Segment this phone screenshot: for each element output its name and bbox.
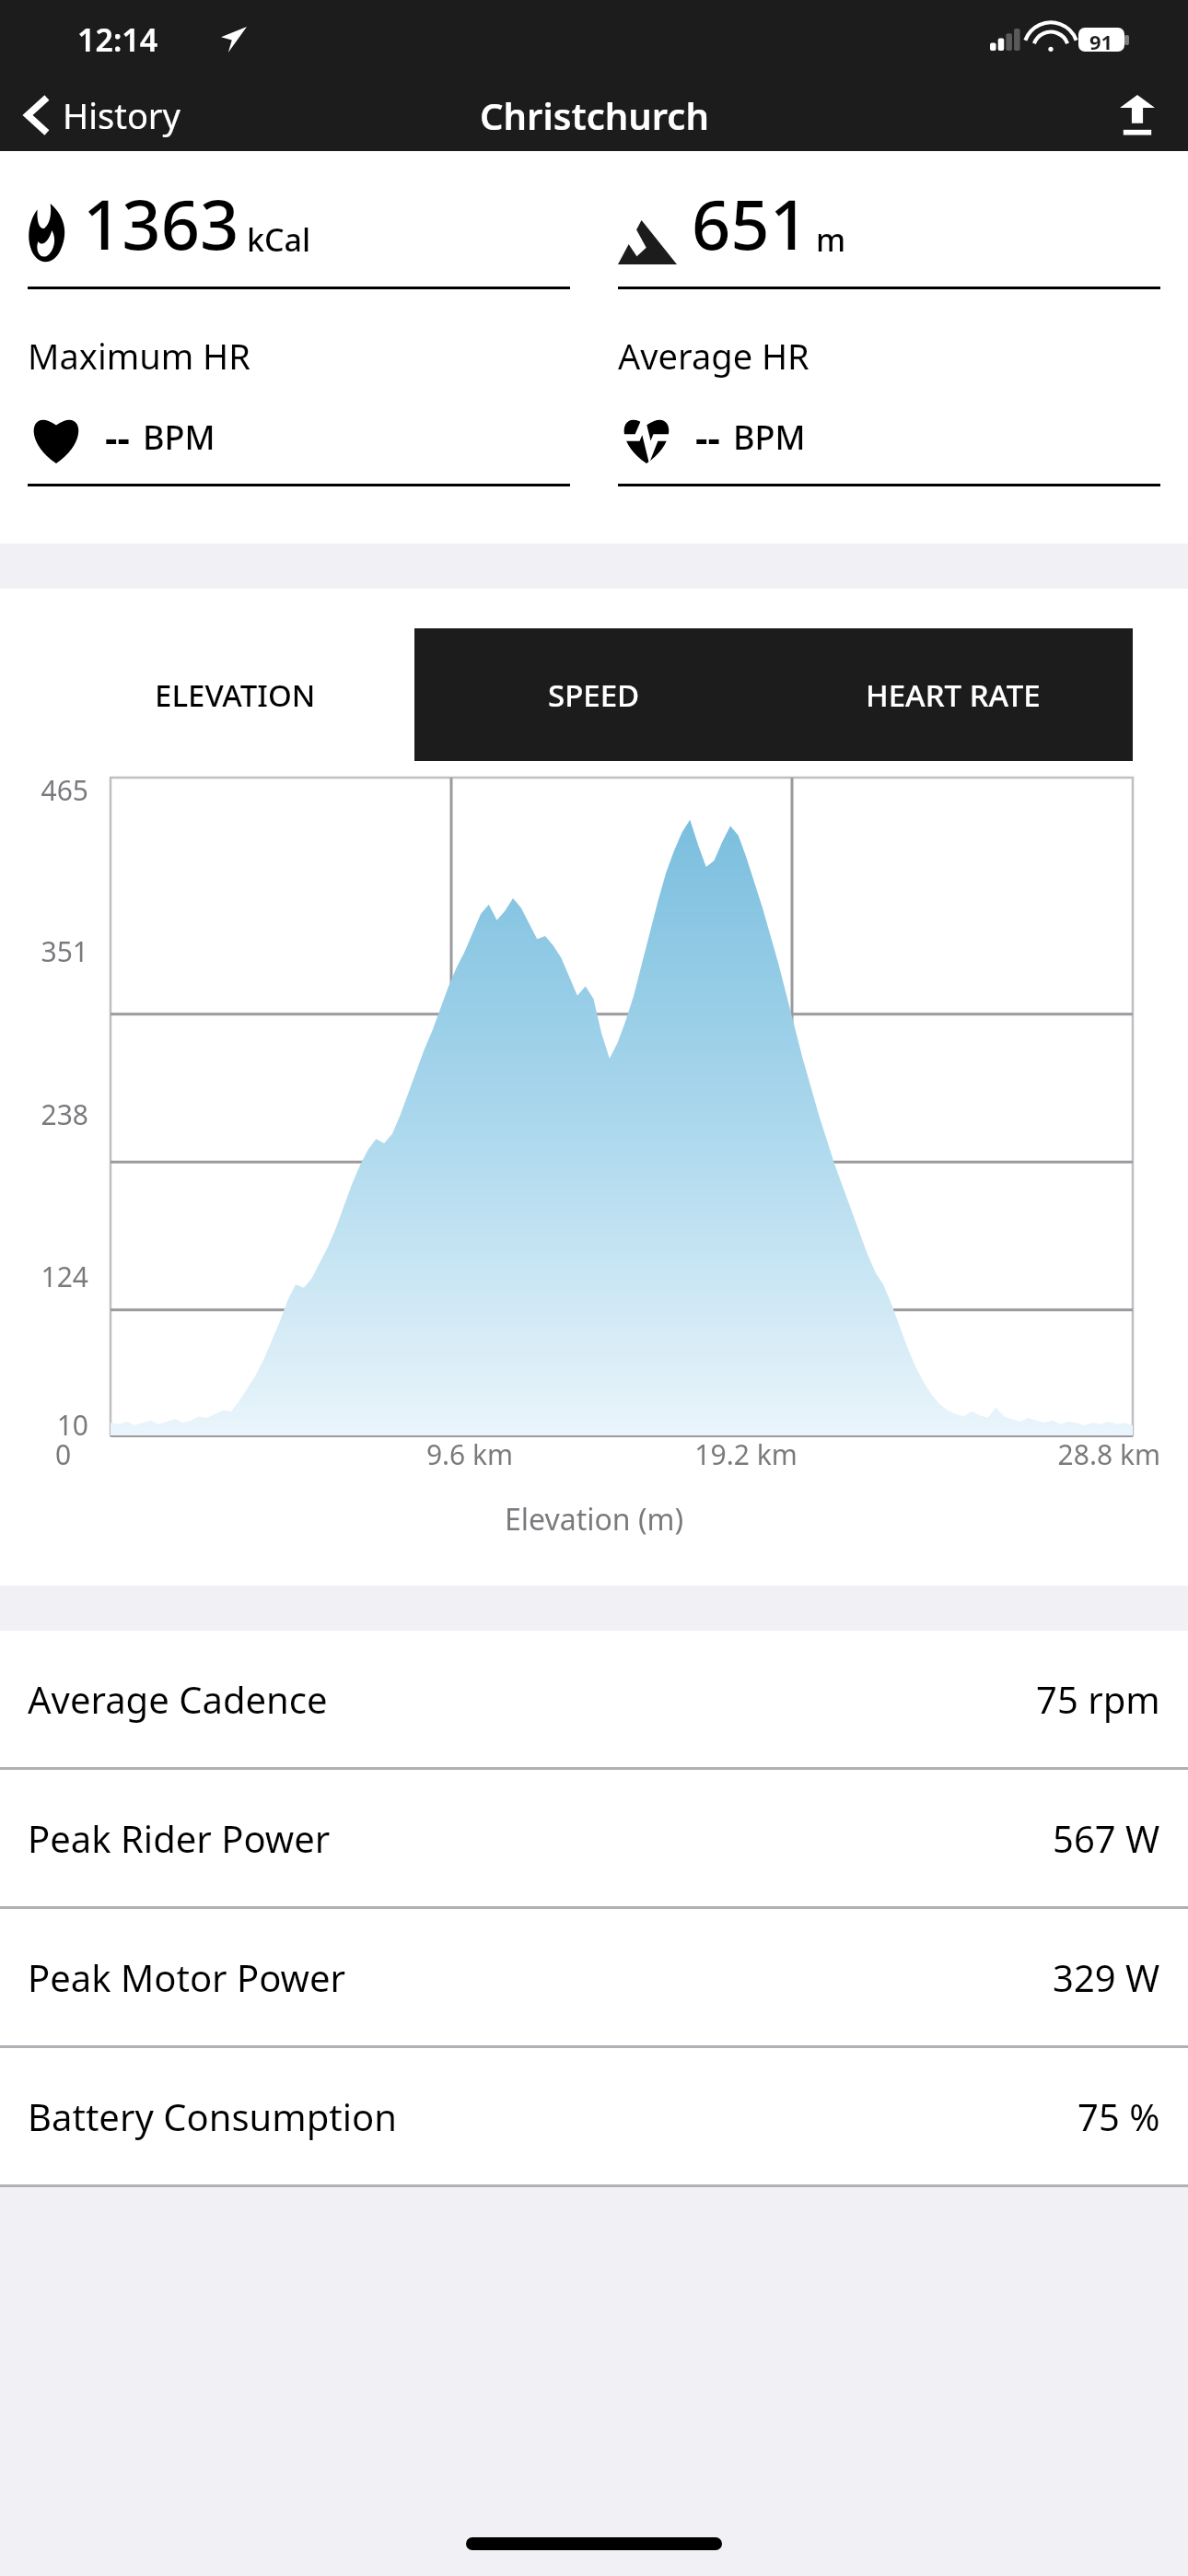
- button[interactable]: SPEED: [414, 628, 774, 761]
- button[interactable]: HEART RATE: [774, 628, 1133, 761]
- staticText: Average HR: [618, 332, 809, 380]
- staticText: 329 W: [1053, 1952, 1160, 2002]
- staticText: Maximum HR: [28, 332, 250, 380]
- staticText: 1363: [83, 177, 239, 270]
- button[interactable]: Battery Consumption: [0, 2048, 1188, 2184]
- staticText: BPM: [143, 415, 215, 460]
- staticText: Average Cadence: [28, 1674, 328, 1724]
- staticText: History: [63, 91, 181, 139]
- staticText: 28.8 km: [884, 1435, 1160, 1473]
- staticText: 9.6 km: [332, 1435, 608, 1473]
- staticText: Peak Rider Power: [28, 1813, 331, 1863]
- button[interactable]: History: [0, 79, 208, 151]
- staticText: BPM: [733, 415, 806, 460]
- staticText: 567 W: [1053, 1813, 1160, 1863]
- staticText: HEART RATE: [866, 674, 1041, 716]
- staticText: 351: [0, 932, 88, 970]
- staticText: 651: [692, 177, 809, 270]
- staticText: Peak Motor Power: [28, 1952, 346, 2002]
- button[interactable]: Peak Rider Power: [0, 1770, 1188, 1906]
- staticText: SPEED: [548, 674, 640, 716]
- staticText: 10: [0, 1406, 88, 1444]
- button[interactable]: Average Cadence: [0, 1631, 1188, 1767]
- staticText: --: [105, 411, 130, 463]
- staticText: 19.2 km: [608, 1435, 884, 1473]
- staticText: Elevation (m): [0, 1499, 1188, 1540]
- staticText: Battery Consumption: [28, 2091, 397, 2141]
- staticText: --: [695, 411, 720, 463]
- staticText: 12:14: [77, 18, 158, 61]
- button[interactable]: Peak Motor Power: [0, 1909, 1188, 2045]
- staticText: 124: [0, 1258, 88, 1295]
- staticText: m: [816, 218, 846, 261]
- staticText: Christchurch: [480, 90, 709, 140]
- staticText: 75 %: [1077, 2091, 1160, 2141]
- staticText: 238: [0, 1095, 88, 1133]
- staticText: 465: [0, 771, 88, 809]
- button[interactable]: Share: [1087, 79, 1188, 151]
- staticText: 75 rpm: [1036, 1674, 1160, 1724]
- button[interactable]: ELEVATION: [55, 628, 414, 761]
- staticText: kCal: [247, 218, 311, 261]
- staticText: ELEVATION: [155, 674, 316, 716]
- staticText: 91: [1089, 28, 1113, 52]
- staticText: 0: [55, 1435, 332, 1473]
